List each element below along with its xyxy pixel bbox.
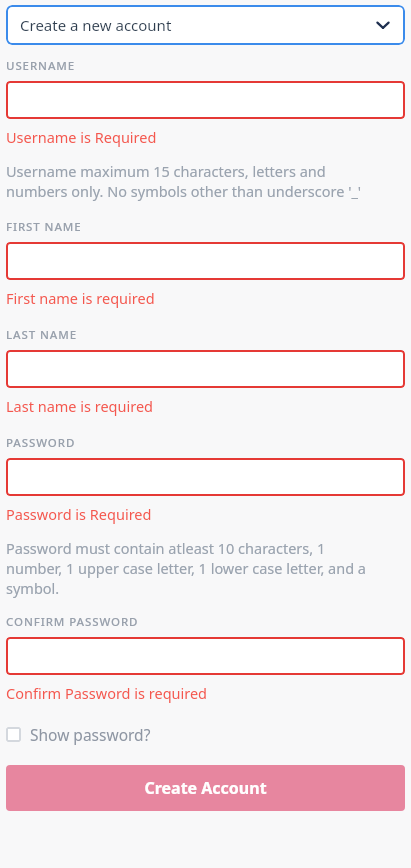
other: Expand: [375, 17, 391, 33]
staticText: numbers only. No symbols other than unde…: [6, 181, 362, 201]
button[interactable]: Show password?: [6, 721, 405, 748]
button[interactable]: USERNAME: [6, 81, 405, 119]
staticText: Show password?: [30, 724, 151, 745]
staticText: number, 1 upper case letter, 1 lower cas…: [6, 558, 366, 578]
staticText: symbol.: [6, 578, 60, 598]
staticText: Password is Required: [6, 504, 152, 524]
button[interactable]: CONFIRM PASSWORD: [6, 637, 405, 675]
staticText: CONFIRM PASSWORD: [6, 614, 139, 630]
staticText: USERNAME: [6, 58, 76, 74]
staticText: Create Account: [144, 777, 267, 799]
staticText: FIRST NAME: [6, 219, 82, 235]
button[interactable]: LAST NAME: [6, 350, 405, 388]
staticText: Create a new account: [20, 15, 375, 35]
staticText: First name is required: [6, 288, 155, 308]
staticText: LAST NAME: [6, 327, 77, 343]
button[interactable]: Create a new account: [6, 5, 405, 45]
staticText: Password must contain atleast 10 charact…: [6, 538, 326, 558]
staticText: Last name is required: [6, 396, 154, 416]
staticText: PASSWORD: [6, 435, 76, 451]
staticText: Confirm Password is required: [6, 683, 208, 703]
button[interactable]: FIRST NAME: [6, 242, 405, 280]
button[interactable]: Create Account: [6, 765, 405, 811]
staticText: Username is Required: [6, 127, 157, 147]
staticText: Username maximum 15 characters, letters …: [6, 161, 326, 181]
button[interactable]: PASSWORD: [6, 458, 405, 496]
